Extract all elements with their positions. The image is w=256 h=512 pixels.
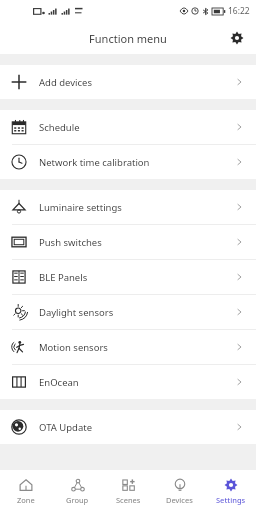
- staticText: Group: [66, 495, 89, 505]
- staticText: Push switches: [39, 236, 102, 249]
- button[interactable]: Network time calibration: [0, 145, 256, 179]
- staticText: Daylight sensors: [39, 306, 114, 319]
- staticText: Network time calibration: [39, 156, 150, 169]
- staticText: Luminaire settings: [39, 201, 122, 214]
- button[interactable]: Settings: [226, 27, 248, 49]
- button[interactable]: Push switches: [0, 225, 256, 259]
- staticText: Schedule: [39, 121, 80, 134]
- staticText: Scenes: [116, 495, 141, 505]
- staticText: Function menu: [89, 31, 167, 46]
- button[interactable]: Add devices: [0, 65, 256, 99]
- button[interactable]: Group: [52, 470, 103, 512]
- button[interactable]: Zone: [0, 470, 52, 512]
- button[interactable]: Devices: [154, 470, 205, 512]
- button[interactable]: Schedule: [0, 110, 256, 144]
- button[interactable]: Scenes: [103, 470, 154, 512]
- button[interactable]: Motion sensors: [0, 330, 256, 364]
- staticText: Zone: [17, 495, 35, 505]
- staticText: Settings: [216, 495, 246, 505]
- staticText: BLE Panels: [39, 271, 88, 284]
- button[interactable]: Daylight sensors: [0, 295, 256, 329]
- button[interactable]: OTA Update: [0, 410, 256, 444]
- staticText: EnOcean: [39, 376, 79, 389]
- button[interactable]: EnOcean: [0, 365, 256, 399]
- staticText: OTA Update: [39, 421, 93, 434]
- button[interactable]: BLE Panels: [0, 260, 256, 294]
- staticText: Devices: [166, 495, 193, 505]
- button[interactable]: Luminaire settings: [0, 190, 256, 224]
- button[interactable]: Settings: [205, 470, 256, 512]
- staticText: 16:22: [228, 5, 250, 17]
- staticText: Add devices: [39, 76, 92, 89]
- staticText: Motion sensors: [39, 341, 108, 354]
